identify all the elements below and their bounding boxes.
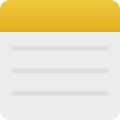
button[interactable]: List item [0,66,120,76]
button[interactable]: List item [0,43,120,53]
button[interactable]: List item [0,88,120,98]
